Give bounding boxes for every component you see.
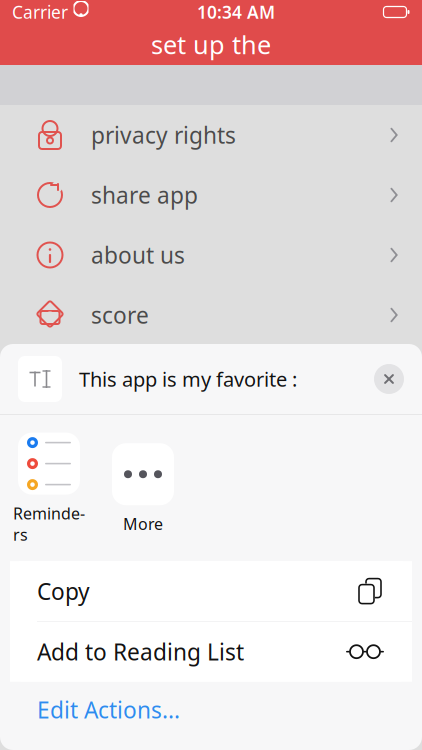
staticText: set up the [151,28,271,61]
staticText: Reminders [13,503,85,545]
staticText: More [123,513,163,534]
staticText: Add to Reading List [37,637,244,667]
staticText: Edit Actions... [37,695,180,725]
staticText: 10:34 AM [197,0,275,23]
button[interactable]: Reminders [10,433,88,545]
button[interactable]: Copy [10,561,412,622]
staticText: about us [91,240,185,270]
button[interactable]: Edit Actions... [0,682,422,738]
button[interactable]: privacy rights [0,105,422,165]
staticText: This app is my favorite : [79,366,297,392]
button[interactable]: about us [0,225,422,285]
staticText: Carrier [12,0,68,23]
button[interactable]: share app [0,165,422,225]
staticText: score [91,300,149,330]
staticText: share app [91,180,198,210]
button[interactable]: Add to Reading List [10,622,412,682]
staticText: Copy [37,576,90,606]
button[interactable]: score [0,285,422,345]
staticText: privacy rights [91,120,236,150]
button[interactable]: Close [367,357,411,401]
button[interactable]: More [104,443,182,534]
